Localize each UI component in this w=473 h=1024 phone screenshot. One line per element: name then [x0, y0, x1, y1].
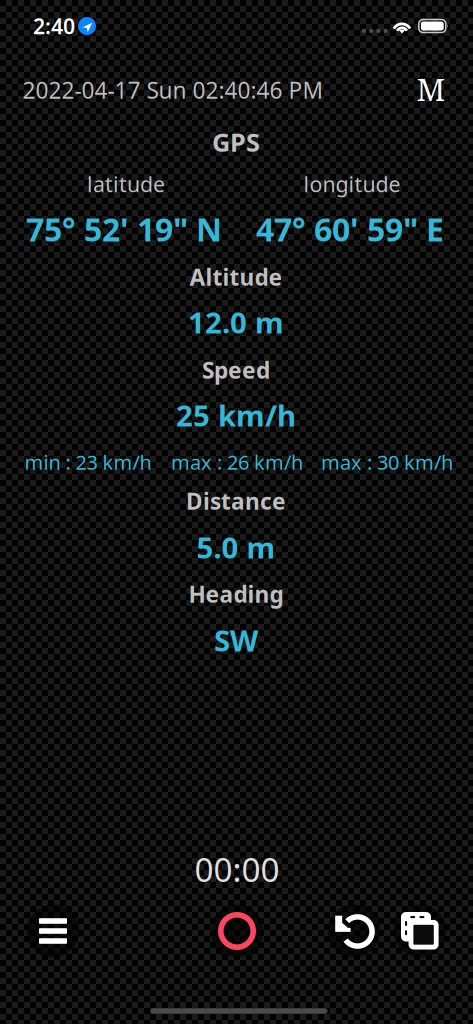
staticText: Heading — [188, 579, 283, 609]
staticText: Distance — [186, 486, 286, 516]
staticText: GPS — [212, 125, 260, 159]
staticText: M — [416, 68, 445, 110]
staticText: longitude — [303, 170, 400, 198]
staticText: 00:00 — [194, 847, 279, 891]
staticText: 2022-04-17 Sun 02:40:46 PM — [22, 75, 323, 105]
staticText: Speed — [202, 355, 270, 385]
staticText: max : 30 km/h — [321, 449, 453, 475]
staticText: 12.0 m — [188, 302, 284, 341]
staticText: 75° 52' 19" N — [26, 208, 222, 250]
button[interactable]: Duplicate — [387, 898, 453, 964]
staticText: latitude — [87, 170, 165, 198]
staticText: 25 km/h — [176, 395, 296, 434]
staticText: 47° 60' 59" E — [256, 208, 444, 250]
staticText: 2:40 — [33, 12, 75, 40]
button[interactable]: Record — [204, 898, 270, 964]
staticText: SW — [214, 620, 258, 659]
staticText: max : 26 km/h — [171, 449, 303, 475]
button[interactable]: Reset — [321, 898, 387, 964]
staticText: 5.0 m — [196, 527, 275, 566]
staticText: min : 23 km/h — [24, 449, 151, 475]
staticText: Altitude — [189, 262, 282, 292]
button[interactable]: Menu — [20, 898, 86, 964]
